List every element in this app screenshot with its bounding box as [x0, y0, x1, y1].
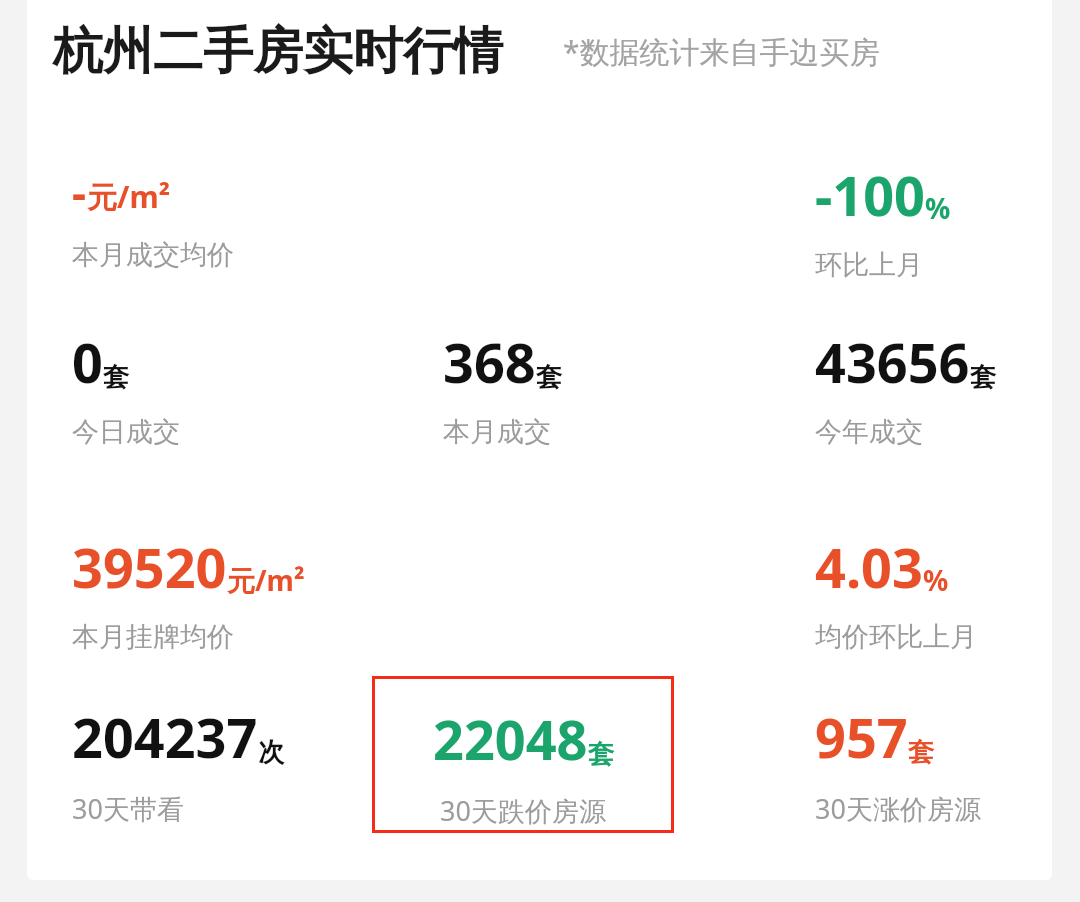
button[interactable]: 368 — [443, 325, 562, 449]
staticText: 均价环比上月 — [815, 620, 977, 654]
staticText: 30天跌价房源 — [440, 792, 606, 829]
staticText: 957 — [815, 700, 908, 774]
staticText: % — [925, 189, 951, 227]
staticText: % — [923, 561, 949, 599]
staticText: 套 — [588, 738, 614, 771]
staticText: 39520 — [72, 530, 227, 604]
staticText: 4.03 — [815, 530, 923, 604]
staticText: *数据统计来自手边买房 — [563, 31, 880, 72]
staticText: 套 — [970, 361, 996, 394]
staticText: 22048 — [433, 702, 588, 776]
staticText: 套 — [103, 361, 129, 394]
staticText: 30天涨价房源 — [815, 790, 981, 827]
staticText: 次 — [258, 736, 284, 769]
staticText: 元/m² — [87, 176, 171, 217]
button[interactable]: 957 — [815, 700, 981, 827]
button[interactable]: 4.03 — [815, 530, 977, 654]
staticText: 套 — [908, 736, 934, 769]
staticText: - — [72, 162, 87, 222]
staticText: 元/m² — [227, 561, 305, 599]
button[interactable]: 0 — [72, 325, 180, 449]
button[interactable]: - — [72, 162, 234, 272]
staticText: -100 — [815, 158, 925, 232]
button[interactable]: -100 — [815, 158, 951, 282]
staticText: 本月挂牌均价 — [72, 620, 234, 654]
staticText: 368 — [443, 325, 536, 399]
staticText: 今日成交 — [72, 415, 180, 449]
staticText: 本月成交均价 — [72, 238, 234, 272]
staticText: 今年成交 — [815, 415, 923, 449]
staticText: 204237 — [72, 700, 258, 774]
button[interactable]: 43656 — [815, 325, 996, 449]
button[interactable]: 204237 — [72, 700, 284, 827]
staticText: 30天带看 — [72, 790, 184, 827]
staticText: 本月成交 — [443, 415, 551, 449]
button[interactable]: 39520 — [72, 530, 305, 654]
staticText: 43656 — [815, 325, 970, 399]
button[interactable]: 30天跌价房源 — [372, 676, 674, 833]
staticText: 0 — [72, 325, 103, 399]
staticText: 环比上月 — [815, 248, 923, 282]
staticText: 杭州二手房实时行情 — [53, 20, 503, 83]
staticText: 套 — [536, 361, 562, 394]
